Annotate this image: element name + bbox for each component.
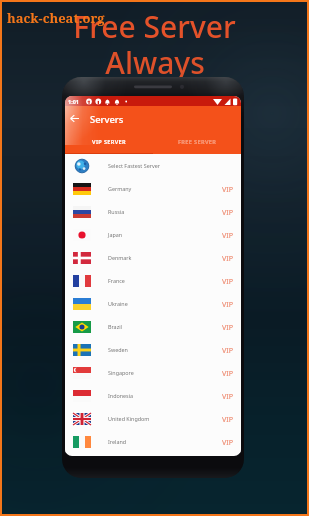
button[interactable]: Back <box>67 111 82 126</box>
staticText: Select Fastest Server <box>108 162 160 169</box>
staticText: VIP <box>222 299 234 309</box>
staticText: VIP <box>222 184 234 194</box>
button[interactable]: FREE SERVER <box>153 131 241 154</box>
staticText: VIP <box>222 207 234 217</box>
staticText: Japan <box>108 231 123 238</box>
button[interactable]: Japan <box>65 223 241 246</box>
staticText: Singapore <box>108 369 134 376</box>
staticText: VIP <box>222 437 234 447</box>
button[interactable]: Ireland <box>65 430 241 453</box>
staticText: France <box>108 277 125 284</box>
button[interactable]: Select Fastest Server <box>65 154 241 177</box>
staticText: VIP <box>222 276 234 286</box>
staticText: Servers <box>90 113 124 126</box>
staticText: VIP SERVER <box>92 138 127 146</box>
button[interactable]: Sweden <box>65 338 241 361</box>
staticText: Ireland <box>108 438 127 445</box>
button[interactable]: Brazil <box>65 315 241 338</box>
staticText: Ukraine <box>108 300 128 307</box>
staticText: 1:01 <box>68 98 79 105</box>
staticText: VIP <box>222 345 234 355</box>
staticText: VIP <box>222 368 234 378</box>
staticText: Always <box>105 42 205 83</box>
staticText: VIP <box>222 414 234 424</box>
staticText: FREE SERVER <box>178 138 217 146</box>
button[interactable]: France <box>65 269 241 292</box>
button[interactable]: United Kingdom <box>65 407 241 430</box>
staticText: Brazil <box>108 323 122 330</box>
staticText: Denmark <box>108 254 132 261</box>
staticText: VIP <box>222 253 234 263</box>
staticText: Indonesia <box>108 392 134 399</box>
staticText: hack-cheat.org <box>7 9 105 27</box>
staticText: Free Server <box>73 6 236 47</box>
staticText: Russia <box>108 208 125 215</box>
staticText: VIP <box>222 230 234 240</box>
button[interactable]: VIP SERVER <box>65 131 153 154</box>
staticText: United Kingdom <box>108 415 150 422</box>
staticText: Sweden <box>108 346 128 353</box>
button[interactable]: Indonesia <box>65 384 241 407</box>
button[interactable]: Russia <box>65 200 241 223</box>
staticText: VIP <box>222 322 234 332</box>
button[interactable]: Singapore <box>65 361 241 384</box>
button[interactable]: Denmark <box>65 246 241 269</box>
button[interactable]: Germany <box>65 177 241 200</box>
staticText: Germany <box>108 185 132 192</box>
staticText: VIP <box>222 391 234 401</box>
button[interactable]: Ukraine <box>65 292 241 315</box>
